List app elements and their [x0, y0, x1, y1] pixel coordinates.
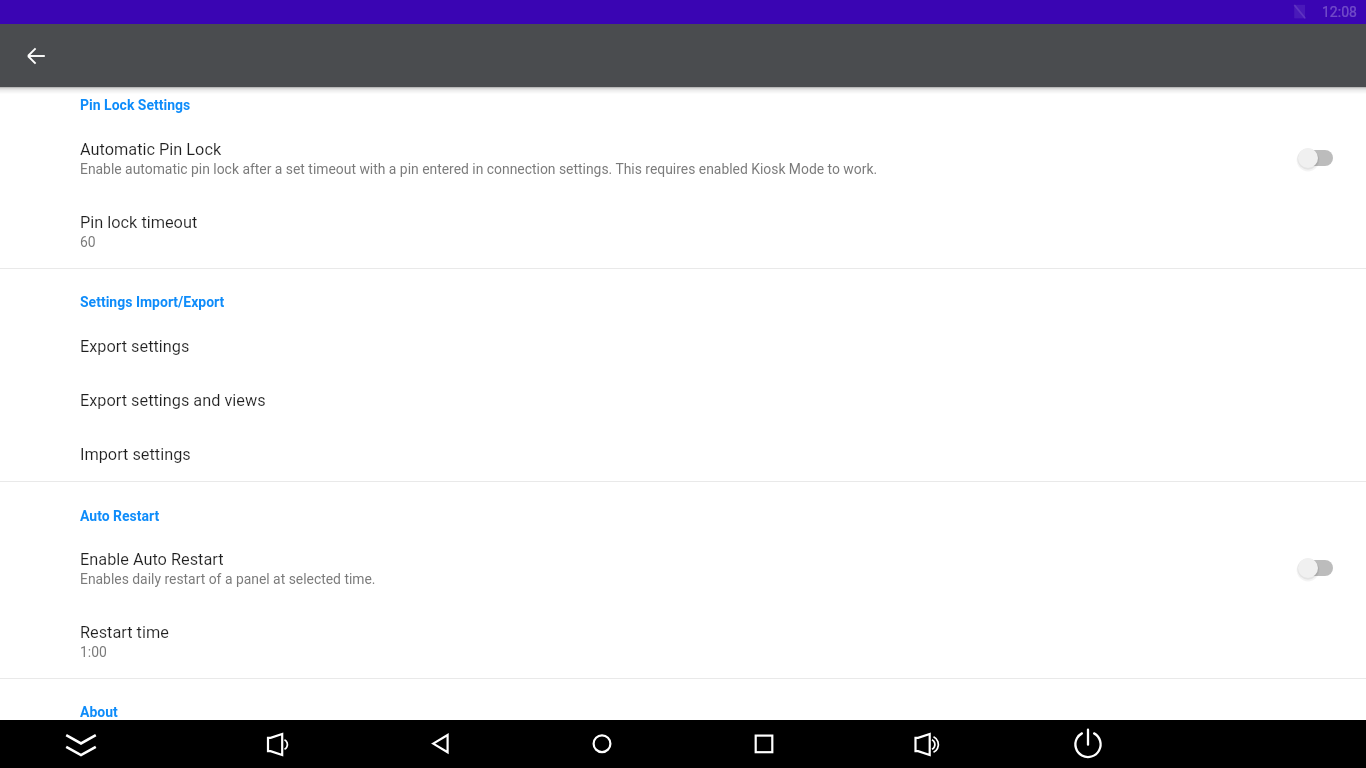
button[interactable]: Enable Auto Restart [0, 550, 1366, 602]
staticText: Enables daily restart of a panel at sele… [80, 571, 376, 587]
staticText: 12:08 [1322, 4, 1357, 20]
button[interactable]: Restart time [0, 623, 1366, 675]
button[interactable]: Home [578, 720, 626, 768]
staticText: About [80, 704, 118, 720]
staticText: Automatic Pin Lock [80, 140, 222, 159]
staticText: 1:00 [80, 644, 107, 660]
staticText: 60 [80, 234, 96, 250]
staticText: Export settings [80, 337, 190, 356]
staticText: Pin Lock Settings [80, 97, 191, 113]
staticText: Export settings and views [80, 391, 266, 410]
button[interactable]: Collapse navigation bar [57, 720, 105, 768]
button[interactable]: Import settings [0, 445, 1366, 479]
button[interactable]: Volume down [253, 720, 301, 768]
other: No network [1292, 3, 1308, 19]
staticText: Enable automatic pin lock after a set ti… [80, 161, 878, 177]
staticText: Enable Auto Restart [80, 550, 224, 569]
button[interactable]: Pin lock timeout [0, 213, 1366, 265]
button[interactable]: Navigate up [12, 32, 60, 80]
staticText: Settings Import/Export [80, 294, 225, 310]
button[interactable]: Toggle switch, off [1283, 142, 1335, 174]
staticText: Import settings [80, 445, 191, 464]
button[interactable]: Volume up [902, 720, 950, 768]
button[interactable]: Back [416, 720, 464, 768]
button[interactable]: Recent apps [740, 720, 788, 768]
staticText: Pin lock timeout [80, 213, 198, 232]
button[interactable]: Power [1064, 720, 1112, 768]
button[interactable]: Automatic Pin Lock [0, 140, 1366, 192]
button[interactable]: Toggle switch, off [1283, 552, 1335, 584]
button[interactable]: Export settings [0, 337, 1366, 375]
staticText: Restart time [80, 623, 169, 642]
staticText: Auto Restart [80, 508, 160, 524]
button[interactable]: Export settings and views [0, 391, 1366, 429]
